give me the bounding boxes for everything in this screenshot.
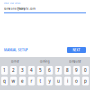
staticText: 3 bbox=[21, 67, 24, 73]
staticText: 0 bbox=[84, 67, 87, 73]
button[interactable]: e bbox=[19, 77, 26, 85]
staticText: y bbox=[48, 78, 50, 84]
button[interactable]: w bbox=[10, 77, 17, 85]
staticText: Enter your email bbox=[4, 1, 21, 4]
button[interactable]: coming bbox=[30, 57, 60, 66]
button[interactable]: 6 bbox=[46, 66, 53, 75]
staticText: corner bbox=[11, 60, 19, 63]
staticText: i bbox=[67, 78, 68, 84]
button[interactable]: NEXT bbox=[67, 47, 86, 53]
button[interactable]: 1 bbox=[1, 66, 8, 75]
button[interactable]: o bbox=[73, 77, 80, 85]
staticText: 6 bbox=[48, 67, 51, 73]
staticText: 4 bbox=[30, 67, 33, 73]
staticText: 7 bbox=[57, 67, 60, 73]
staticText: 5 bbox=[39, 67, 42, 73]
button[interactable]: 8 bbox=[64, 66, 71, 75]
staticText: o bbox=[75, 78, 78, 84]
button[interactable]: 3 bbox=[19, 66, 26, 75]
button[interactable]: 7 bbox=[55, 66, 62, 75]
button[interactable]: MANUAL SETUP bbox=[4, 47, 28, 53]
staticText: p bbox=[84, 78, 87, 84]
staticText: q bbox=[3, 78, 6, 84]
button[interactable]: corner bbox=[0, 57, 30, 66]
button[interactable]: u bbox=[55, 77, 62, 85]
button[interactable]: 2 bbox=[10, 66, 17, 75]
staticText: t bbox=[39, 78, 41, 84]
button[interactable]: t bbox=[37, 77, 44, 85]
button[interactable]: r bbox=[28, 77, 35, 85]
staticText: r bbox=[30, 78, 32, 84]
button[interactable]: i bbox=[64, 77, 71, 85]
staticText: coming bbox=[40, 60, 50, 63]
button[interactable]: 4 bbox=[28, 66, 35, 75]
button[interactable]: y bbox=[46, 77, 53, 85]
staticText: e bbox=[21, 78, 24, 84]
staticText: u bbox=[57, 78, 60, 84]
button[interactable]: q bbox=[1, 77, 8, 85]
button[interactable]: 0 bbox=[82, 66, 89, 75]
button[interactable]: 5 bbox=[37, 66, 44, 75]
staticText: MANUAL SETUP bbox=[4, 48, 28, 52]
staticText: NEXT bbox=[72, 48, 80, 52]
button[interactable]: p bbox=[82, 77, 89, 85]
button[interactable]: computer bbox=[60, 57, 90, 66]
staticText: w bbox=[11, 78, 15, 84]
staticText: 8 bbox=[66, 67, 69, 73]
staticText: 9 bbox=[75, 67, 78, 73]
staticText: 2 bbox=[12, 67, 15, 73]
staticText: someone@example.com bbox=[4, 7, 35, 11]
button[interactable]: 9 bbox=[73, 66, 80, 75]
staticText: 1 bbox=[3, 67, 6, 73]
staticText: computer bbox=[69, 60, 81, 63]
